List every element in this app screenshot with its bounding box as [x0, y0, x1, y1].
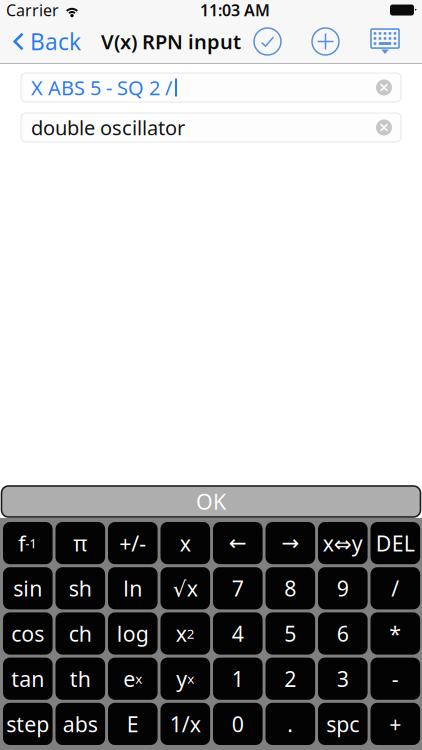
button[interactable]: ln — [108, 567, 158, 609]
staticText: Back — [30, 26, 81, 56]
button[interactable]: → — [265, 522, 315, 564]
button[interactable]: 8 — [265, 567, 315, 609]
button[interactable]: 0 — [213, 703, 263, 745]
staticText: . — [287, 710, 293, 738]
staticText: → — [281, 531, 299, 555]
staticText: step — [6, 710, 49, 738]
button[interactable]: Apply — [253, 20, 282, 63]
button[interactable]: 7 — [213, 567, 263, 609]
button[interactable]: spc — [318, 703, 368, 745]
staticText: E — [127, 710, 139, 738]
staticText: 1 — [232, 664, 244, 693]
button[interactable]: 2 — [265, 658, 315, 700]
staticText: abs — [63, 710, 98, 738]
staticText: -1 — [25, 534, 37, 552]
button[interactable]: th — [55, 658, 105, 700]
button[interactable]: 1 — [213, 658, 263, 700]
button[interactable]: Hide keyboard — [369, 20, 401, 63]
staticText: 2 — [187, 625, 195, 642]
staticText: double oscillator — [31, 114, 185, 141]
button[interactable]: +/- — [108, 522, 158, 564]
button[interactable]: / — [370, 567, 420, 609]
button[interactable]: log — [108, 612, 158, 655]
staticText: X ABS 5 - SQ 2 / — [31, 74, 172, 101]
button[interactable]: 6 — [318, 612, 368, 655]
staticText: 7 — [232, 574, 244, 602]
staticText: 6 — [337, 619, 349, 648]
staticText: y — [176, 664, 187, 693]
staticText: - — [392, 664, 399, 693]
staticText: 4 — [232, 619, 244, 648]
button[interactable]: * — [370, 612, 420, 655]
staticText: * — [389, 619, 401, 648]
staticText: e — [123, 664, 135, 693]
button[interactable]: √x — [160, 567, 210, 609]
staticText: 11:03 AM — [200, 0, 270, 21]
staticText: DEL — [376, 529, 415, 557]
button[interactable]: Clear text — [370, 114, 398, 141]
staticText: OK — [196, 487, 226, 516]
staticText: th — [70, 664, 91, 693]
staticText: 8 — [284, 574, 296, 602]
button[interactable]: f — [3, 522, 53, 564]
button[interactable]: Add — [311, 20, 340, 63]
staticText: 3 — [337, 664, 349, 693]
button[interactable]: + — [370, 703, 420, 745]
button[interactable]: - — [370, 658, 420, 700]
button[interactable]: 4 — [213, 612, 263, 655]
staticText: x — [135, 670, 142, 687]
button[interactable]: x⇔y — [318, 522, 368, 564]
staticText: x⇔y — [323, 529, 363, 557]
button[interactable]: ch — [55, 612, 105, 655]
staticText: +/- — [119, 529, 146, 557]
button[interactable]: 5 — [265, 612, 315, 655]
staticText: 5 — [284, 619, 296, 648]
staticText: x — [180, 529, 191, 557]
staticText: sh — [69, 574, 92, 602]
staticText: π — [73, 529, 87, 557]
button[interactable]: e — [108, 658, 158, 700]
button[interactable]: . — [265, 703, 315, 745]
staticText: tan — [11, 664, 44, 693]
staticText: Carrier — [6, 0, 59, 21]
button[interactable]: cos — [3, 612, 53, 655]
button[interactable]: sin — [3, 567, 53, 609]
staticText: cos — [11, 619, 44, 648]
button[interactable]: 9 — [318, 567, 368, 609]
staticText: √x — [173, 574, 198, 602]
staticText: + — [389, 710, 401, 738]
staticText: 9 — [337, 574, 349, 602]
button[interactable]: E — [108, 703, 158, 745]
button[interactable]: abs — [55, 703, 105, 745]
staticText: 2 — [284, 664, 296, 693]
staticText: log — [117, 619, 149, 648]
staticText: 0 — [232, 710, 244, 738]
button[interactable]: Back — [0, 20, 89, 63]
staticText: V(x) RPN input — [101, 28, 241, 55]
staticText: spc — [326, 710, 359, 738]
staticText: ch — [69, 619, 92, 648]
staticText: ← — [229, 531, 247, 555]
staticText: x — [187, 670, 194, 687]
button[interactable]: DEL — [370, 522, 420, 564]
staticText: x — [176, 619, 187, 648]
button[interactable]: tan — [3, 658, 53, 700]
button[interactable]: sh — [55, 567, 105, 609]
button[interactable]: OK — [1, 486, 420, 517]
button[interactable]: 1/x — [160, 703, 210, 745]
button[interactable]: π — [55, 522, 105, 564]
staticText: f — [18, 529, 25, 557]
button[interactable]: ← — [213, 522, 263, 564]
staticText: 1/x — [170, 710, 201, 738]
button[interactable]: x — [160, 522, 210, 564]
button[interactable]: x — [160, 612, 210, 655]
staticText: ln — [123, 574, 142, 602]
staticText: sin — [13, 574, 42, 602]
button[interactable]: step — [3, 703, 53, 745]
staticText: / — [391, 574, 399, 602]
button[interactable]: y — [160, 658, 210, 700]
button[interactable]: 3 — [318, 658, 368, 700]
button[interactable]: Clear text — [370, 74, 398, 101]
